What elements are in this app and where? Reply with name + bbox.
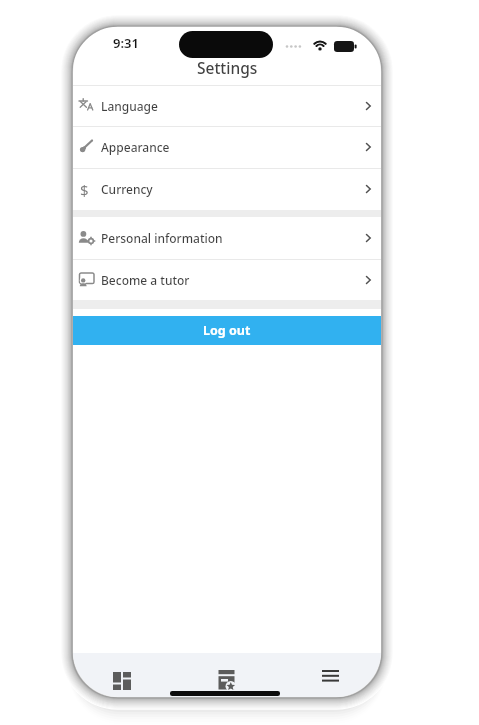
button[interactable] [109, 668, 135, 694]
staticText: Become a tutor [101, 272, 190, 288]
staticText: $ [80, 180, 89, 198]
button[interactable]: $ [73, 168, 381, 209]
staticText: Language [101, 98, 158, 114]
button[interactable]: Language [73, 85, 381, 126]
button[interactable] [213, 667, 239, 693]
button[interactable] [317, 665, 343, 687]
staticText: Appearance [101, 139, 170, 155]
staticText: Currency [101, 181, 153, 197]
staticText: Settings [197, 57, 258, 78]
button[interactable]: Appearance [73, 126, 381, 167]
staticText: Log out [203, 322, 251, 339]
button[interactable]: Become a tutor [73, 259, 381, 300]
button[interactable]: Personal information [73, 217, 381, 258]
staticText: 9:31 [113, 34, 139, 52]
staticText: Personal information [101, 230, 223, 246]
button[interactable]: Log out [73, 316, 381, 345]
